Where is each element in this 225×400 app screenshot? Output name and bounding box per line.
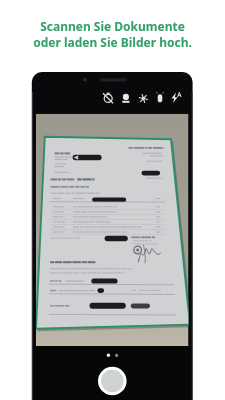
staticText: Scannen Sie Dokumente	[40, 18, 185, 34]
staticText: oder laden Sie Bilder hoch.	[33, 34, 192, 50]
